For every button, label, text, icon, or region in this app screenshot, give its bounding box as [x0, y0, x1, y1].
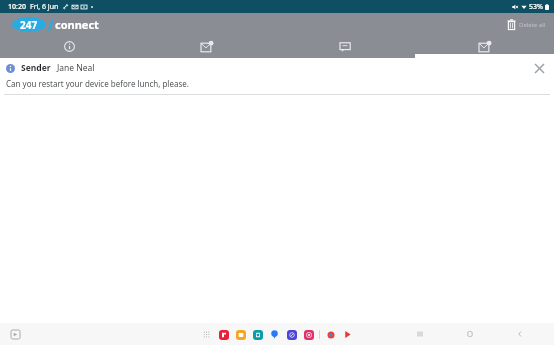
button[interactable]: Browser: [285, 328, 298, 341]
button[interactable]: Close: [532, 61, 546, 75]
button[interactable]: Maps: [268, 328, 281, 341]
button[interactable]: Instagram: [302, 328, 315, 341]
button[interactable]: Delete all: [505, 17, 548, 32]
button[interactable]: Sender: [0, 58, 554, 95]
staticText: 247: [20, 18, 38, 32]
button[interactable]: Calendar: [251, 328, 264, 341]
button[interactable]: Back: [512, 326, 528, 342]
staticText: Fri, 6 Jun: [30, 2, 59, 12]
staticText: 10:20: [8, 2, 26, 12]
staticText: Can you restart your device before lunch…: [6, 78, 189, 89]
button[interactable]: Mail: [138, 36, 276, 58]
staticText: 53%: [529, 2, 543, 12]
button[interactable]: Files: [234, 328, 247, 341]
button[interactable]: Chat: [276, 36, 415, 58]
button[interactable]: Play Store: [341, 328, 354, 341]
staticText: Delete all: [519, 21, 546, 29]
button[interactable]: Inbox: [415, 36, 554, 58]
button[interactable]: Apps: [200, 328, 213, 341]
button[interactable]: Info: [0, 36, 138, 58]
button[interactable]: 247: [12, 17, 99, 32]
button[interactable]: Screenshot: [8, 327, 22, 341]
staticText: Sender: [21, 62, 51, 74]
staticText: connect: [55, 17, 99, 32]
staticText: Jane Neal: [57, 62, 95, 74]
button[interactable]: Chrome: [324, 328, 337, 341]
button[interactable]: Home: [462, 326, 478, 342]
button[interactable]: Recents: [412, 326, 428, 342]
button[interactable]: Flipboard: [217, 328, 230, 341]
